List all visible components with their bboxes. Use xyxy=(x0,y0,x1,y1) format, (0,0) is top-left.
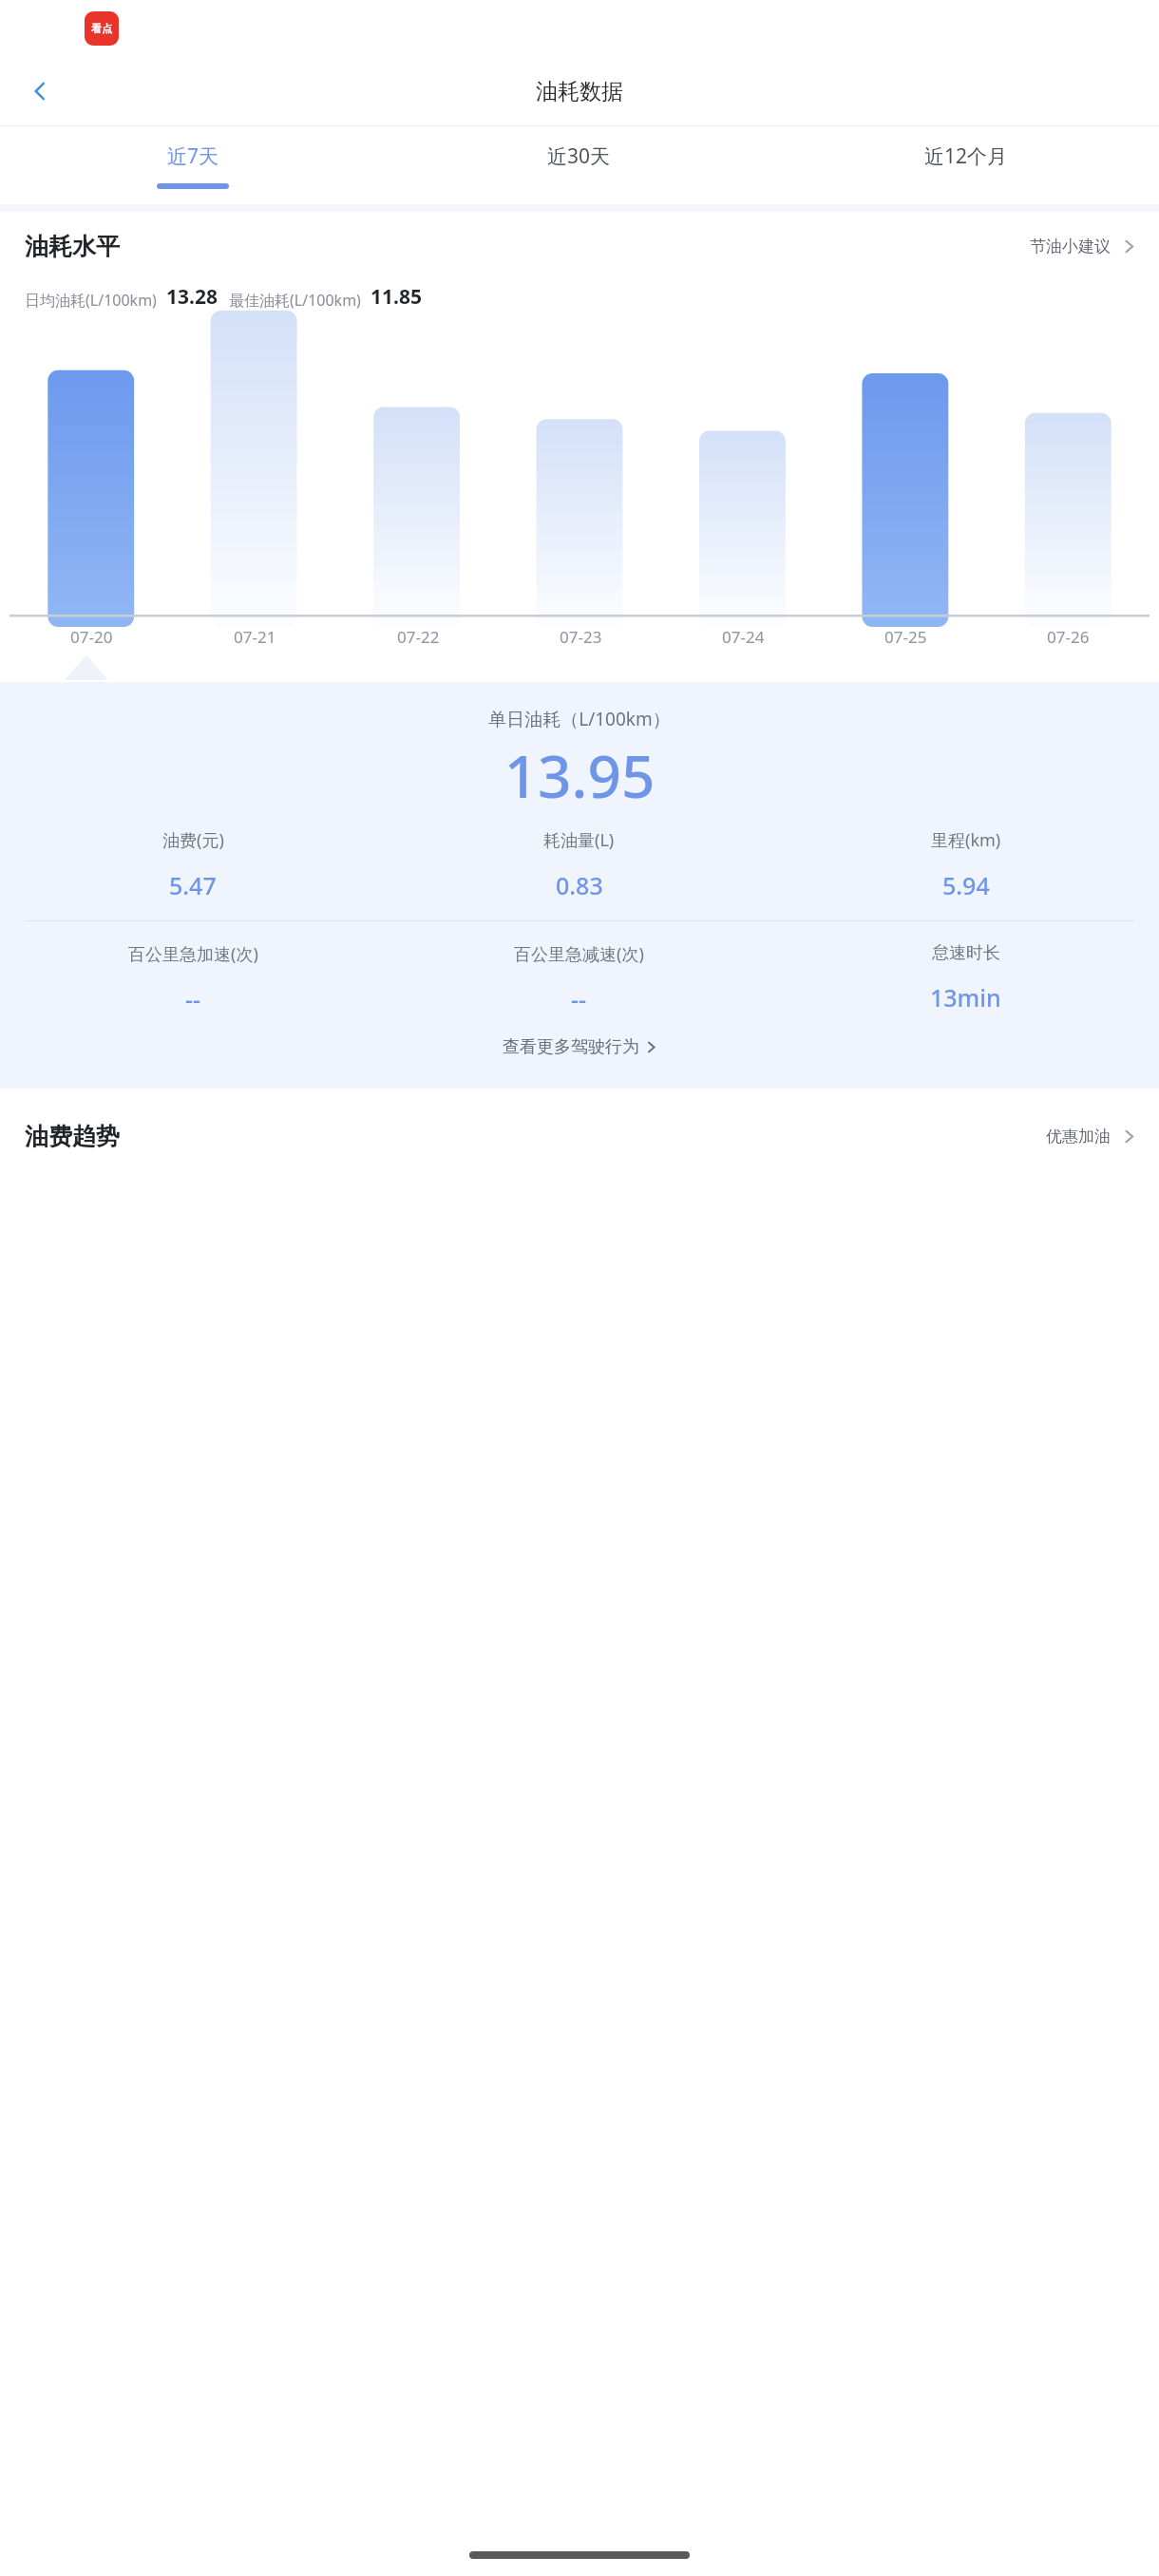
button[interactable]: 优惠加油 xyxy=(1042,1121,1140,1152)
staticText: 5.47 xyxy=(169,869,217,901)
staticText: 13.95 xyxy=(0,735,1159,815)
button[interactable]: 节油小建议 xyxy=(1026,231,1140,262)
staticText: 节油小建议 xyxy=(1030,237,1111,256)
staticText: 07-21 xyxy=(234,626,276,648)
button[interactable]: 近30天 xyxy=(386,126,772,204)
staticText: 07-22 xyxy=(397,626,440,648)
staticText: 查看更多驾驶行为 xyxy=(503,1036,639,1058)
staticText: 油费趋势 xyxy=(25,1122,120,1151)
staticText: 0.83 xyxy=(556,869,603,901)
staticText: -- xyxy=(571,983,587,1015)
staticText: 07-25 xyxy=(884,626,927,648)
button[interactable]: 近7天 xyxy=(0,126,386,204)
staticText: 单日油耗（L/100km） xyxy=(0,707,1159,731)
staticText: 近7天 xyxy=(167,142,219,170)
staticText: 百公里急加速(次) xyxy=(128,942,258,966)
staticText: 07-26 xyxy=(1047,626,1090,648)
staticText: 看点 xyxy=(91,22,112,35)
staticText: 日均油耗(L/100km) xyxy=(25,290,157,311)
staticText: 耗油量(L) xyxy=(543,828,615,852)
staticText: 07-24 xyxy=(722,626,765,648)
staticText: 近30天 xyxy=(547,142,611,170)
staticText: 油耗水平 xyxy=(25,232,120,261)
staticText: 百公里急减速(次) xyxy=(514,942,644,966)
staticText: 怠速时长 xyxy=(932,942,1000,964)
staticText: 里程(km) xyxy=(931,828,1001,852)
staticText: 07-20 xyxy=(70,626,113,648)
button[interactable]: 查看更多驾驶行为 xyxy=(0,1036,1159,1058)
staticText: 近12个月 xyxy=(924,142,1008,170)
button[interactable]: Back xyxy=(13,65,66,118)
staticText: 5.94 xyxy=(942,869,990,901)
button[interactable]: 近12个月 xyxy=(772,126,1159,204)
staticText: 优惠加油 xyxy=(1046,1127,1111,1146)
staticText: 07-23 xyxy=(560,626,602,648)
staticText: -- xyxy=(185,983,201,1015)
staticText: 13min xyxy=(930,981,1001,1013)
staticText: 油耗数据 xyxy=(536,78,623,105)
staticText: 13.28 xyxy=(166,283,218,311)
staticText: 最佳油耗(L/100km) xyxy=(229,290,361,311)
staticText: 11.85 xyxy=(370,283,422,311)
staticText: 油费(元) xyxy=(162,828,224,852)
